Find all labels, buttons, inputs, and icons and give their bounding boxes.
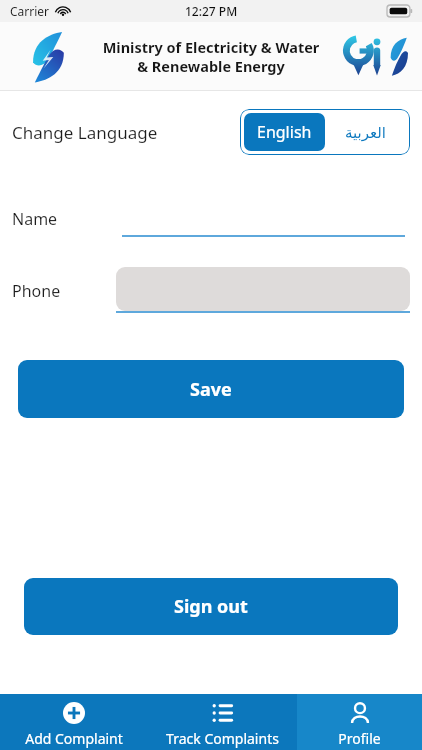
button[interactable]: العربية <box>325 113 406 151</box>
staticText: Phone <box>12 280 61 302</box>
button[interactable]: English <box>244 113 325 151</box>
staticText: Name <box>12 208 58 230</box>
button[interactable] <box>116 267 410 315</box>
staticText: English <box>257 121 312 143</box>
other: Ministry logo <box>26 31 70 83</box>
staticText: Save <box>190 377 232 402</box>
staticText: 12:27 PM <box>185 3 238 19</box>
button[interactable]: Profile <box>297 694 422 750</box>
staticText: Carrier <box>10 3 50 19</box>
staticText: Add Complaint <box>25 729 123 748</box>
button[interactable]: Sign out <box>24 578 398 635</box>
other: Profile <box>349 702 371 724</box>
staticText: العربية <box>345 124 386 141</box>
staticText: Profile <box>338 729 381 748</box>
staticText: Track Complaints <box>166 729 279 748</box>
other: Track Complaints <box>212 702 234 724</box>
button[interactable] <box>122 201 405 237</box>
button[interactable]: Save <box>18 360 404 418</box>
staticText: Change Language <box>12 121 158 144</box>
other: GIS logo <box>346 37 408 77</box>
staticText: Ministry of Electricity & Water & Renewa… <box>80 37 342 76</box>
button[interactable]: Add Complaint <box>0 694 148 750</box>
staticText: Sign out <box>174 594 248 619</box>
other: Add Complaint <box>63 702 85 724</box>
button[interactable]: Track Complaints <box>148 694 297 750</box>
